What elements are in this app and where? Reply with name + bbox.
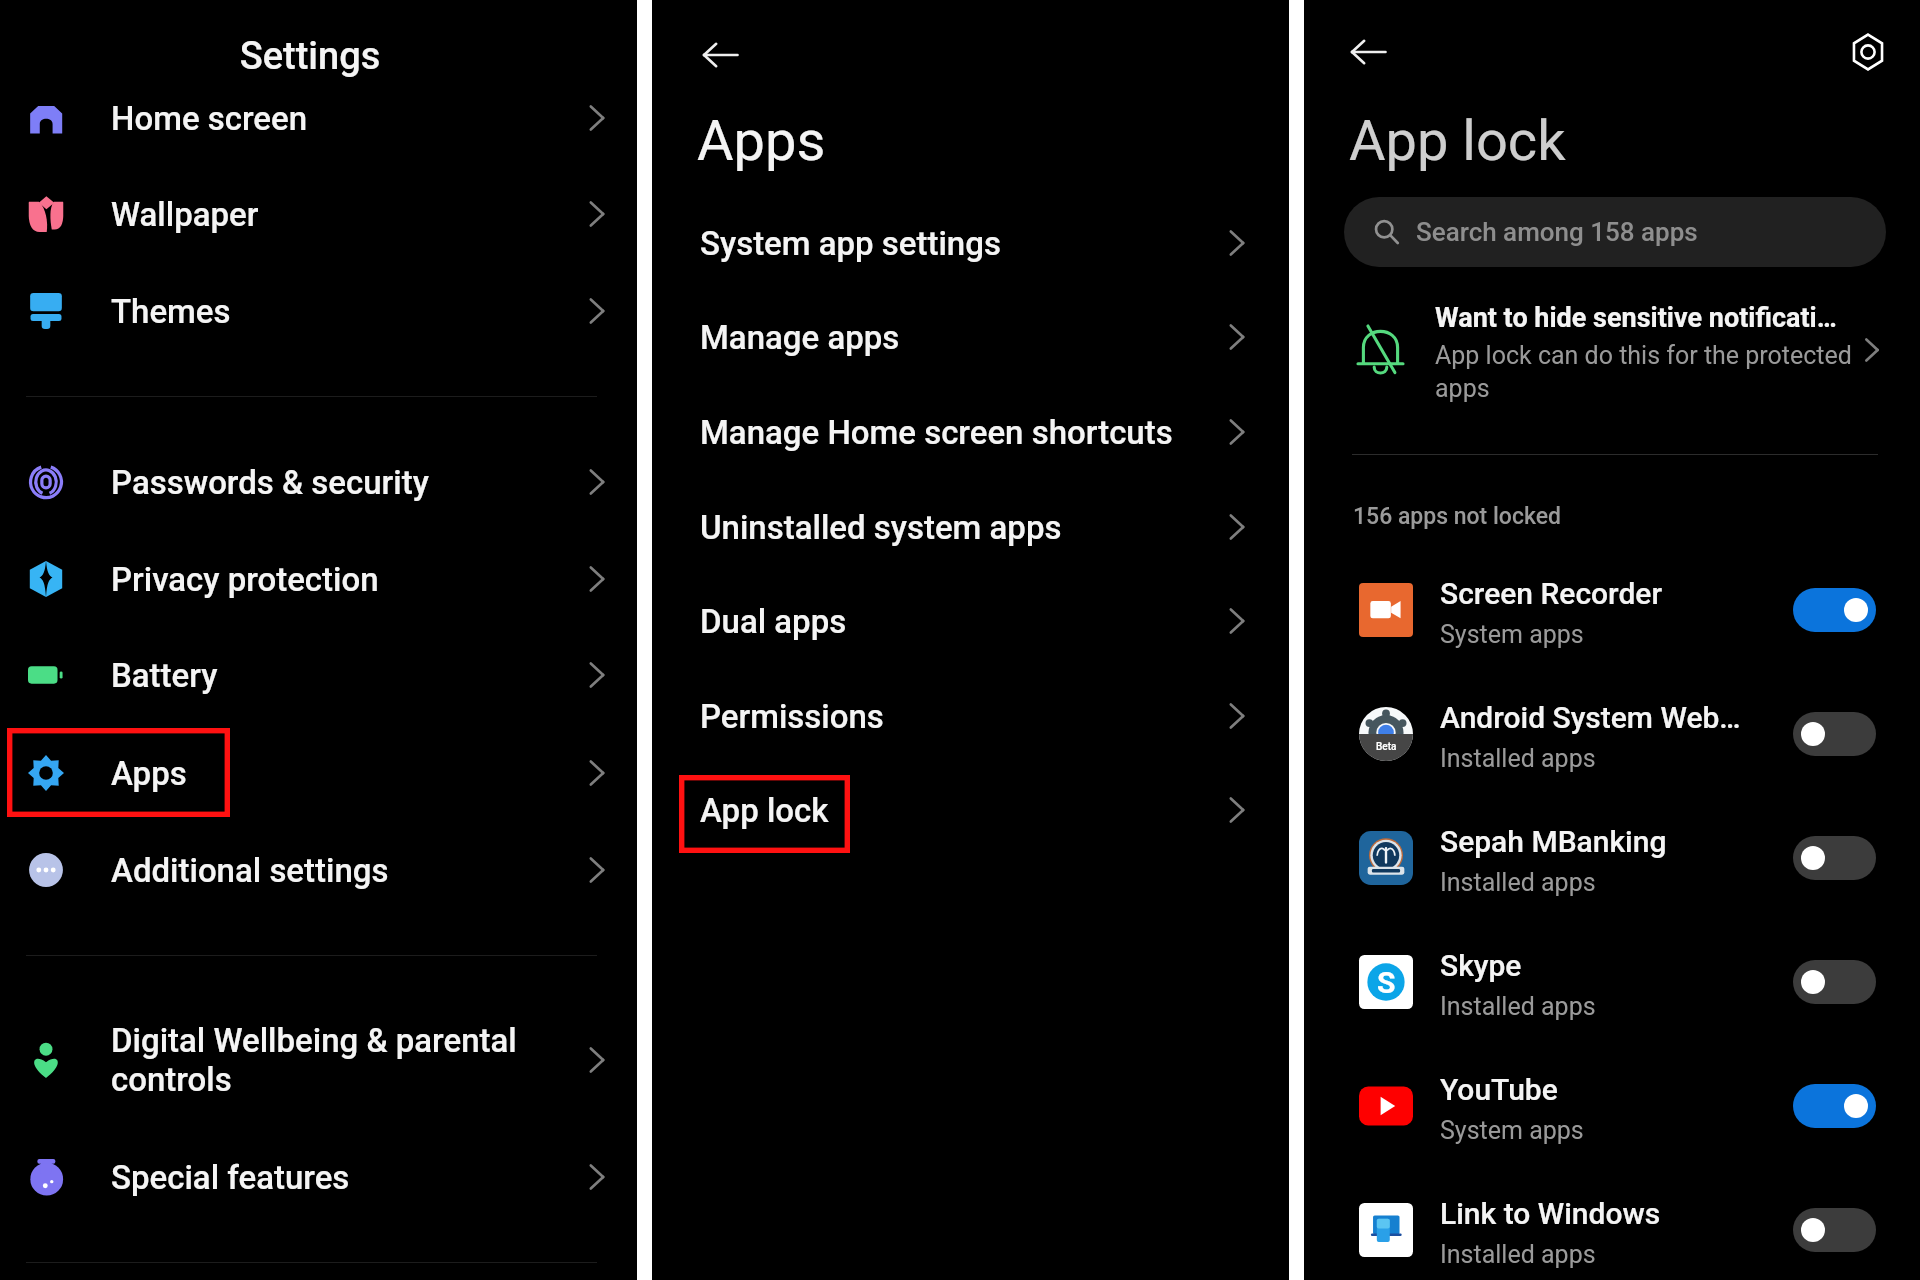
button[interactable] bbox=[0, 531, 637, 627]
staticText: Apps bbox=[697, 108, 826, 174]
staticText: Skype bbox=[1440, 948, 1522, 983]
button[interactable] bbox=[1304, 1168, 1920, 1280]
button[interactable]: Toggle lock bbox=[1793, 1208, 1876, 1252]
staticText: 156 apps not locked bbox=[1353, 503, 1561, 530]
staticText: Manage apps bbox=[700, 318, 900, 357]
button[interactable] bbox=[0, 1000, 637, 1120]
button[interactable] bbox=[652, 196, 1289, 290]
staticText: Digital Wellbeing & parental controls bbox=[111, 1021, 517, 1099]
button[interactable]: Open bbox=[1215, 505, 1259, 549]
button[interactable] bbox=[652, 290, 1289, 384]
staticText: Android System Web… bbox=[1440, 700, 1741, 735]
staticText: Installed apps bbox=[1440, 868, 1596, 897]
button[interactable]: Open bbox=[575, 557, 619, 601]
button[interactable] bbox=[1304, 548, 1920, 672]
button[interactable]: Back bbox=[696, 31, 744, 79]
button[interactable] bbox=[652, 574, 1289, 668]
staticText: Apps bbox=[111, 754, 187, 793]
button[interactable]: Open bbox=[575, 289, 619, 333]
button[interactable]: Open bbox=[575, 96, 619, 140]
button[interactable]: Search among 158 apps bbox=[1344, 197, 1886, 267]
button[interactable]: Toggle lock bbox=[1793, 1084, 1876, 1128]
staticText: App lock bbox=[700, 791, 829, 830]
button[interactable]: Open bbox=[575, 192, 619, 236]
button[interactable]: Open bbox=[575, 751, 619, 795]
staticText: Installed apps bbox=[1440, 992, 1596, 1021]
staticText: Screen Recorder bbox=[1440, 576, 1662, 611]
button[interactable]: Open bbox=[575, 1155, 619, 1199]
staticText: Special features bbox=[111, 1158, 350, 1197]
staticText: S bbox=[1377, 965, 1396, 1000]
staticText: Installed apps bbox=[1440, 744, 1596, 773]
button[interactable]: Open bbox=[575, 848, 619, 892]
button[interactable]: Back bbox=[1344, 28, 1392, 76]
button[interactable] bbox=[652, 480, 1289, 574]
staticText: System apps bbox=[1440, 620, 1584, 649]
staticText: Additional settings bbox=[111, 851, 389, 890]
staticText: Settings bbox=[0, 34, 620, 79]
staticText: Link to Windows bbox=[1440, 1196, 1661, 1231]
button[interactable] bbox=[1304, 796, 1920, 920]
button[interactable]: Open bbox=[1215, 788, 1259, 832]
button[interactable] bbox=[0, 70, 637, 166]
staticText: Dual apps bbox=[700, 602, 847, 641]
staticText: Home screen bbox=[111, 99, 308, 138]
staticText: Privacy protection bbox=[111, 560, 379, 599]
button[interactable]: Toggle lock bbox=[1793, 712, 1876, 756]
button[interactable] bbox=[0, 166, 637, 262]
staticText: Permissions bbox=[700, 697, 884, 736]
button[interactable] bbox=[1304, 672, 1920, 796]
staticText: Want to hide sensitive notificati… bbox=[1435, 302, 1837, 334]
button[interactable] bbox=[0, 627, 637, 723]
staticText: Battery bbox=[111, 656, 218, 695]
staticText: App lock bbox=[1349, 108, 1566, 174]
staticText: Beta bbox=[1376, 741, 1397, 753]
button[interactable] bbox=[652, 763, 1289, 857]
button[interactable] bbox=[1304, 295, 1920, 425]
staticText: Uninstalled system apps bbox=[700, 508, 1062, 547]
button[interactable]: Open bbox=[1850, 328, 1894, 372]
staticText: Themes bbox=[111, 292, 231, 331]
button[interactable] bbox=[0, 725, 637, 821]
button[interactable]: Open bbox=[1215, 221, 1259, 265]
staticText: Wallpaper bbox=[111, 195, 259, 234]
button[interactable]: Settings bbox=[1846, 30, 1890, 74]
staticText: System apps bbox=[1440, 1116, 1584, 1145]
button[interactable]: Open bbox=[575, 460, 619, 504]
button[interactable] bbox=[0, 434, 637, 530]
staticText: Sepah MBanking bbox=[1440, 824, 1667, 859]
button[interactable]: Open bbox=[575, 653, 619, 697]
button[interactable] bbox=[0, 263, 637, 359]
button[interactable]: Open bbox=[1215, 410, 1259, 454]
staticText: Passwords & security bbox=[111, 463, 429, 502]
button[interactable]: Toggle lock bbox=[1793, 588, 1876, 632]
staticText: Search among 158 apps bbox=[1416, 217, 1698, 247]
button[interactable] bbox=[652, 385, 1289, 479]
staticText: System app settings bbox=[700, 224, 1001, 263]
button[interactable]: Toggle lock bbox=[1793, 836, 1876, 880]
button[interactable] bbox=[1304, 920, 1920, 1044]
button[interactable]: Toggle lock bbox=[1793, 960, 1876, 1004]
button[interactable] bbox=[0, 822, 637, 918]
staticText: Manage Home screen shortcuts bbox=[700, 413, 1173, 452]
button[interactable] bbox=[0, 1129, 637, 1225]
button[interactable] bbox=[1304, 1044, 1920, 1168]
button[interactable]: Open bbox=[1215, 599, 1259, 643]
button[interactable]: Open bbox=[1215, 315, 1259, 359]
button[interactable]: Open bbox=[575, 1038, 619, 1082]
staticText: Installed apps bbox=[1440, 1240, 1596, 1269]
button[interactable]: Open bbox=[1215, 694, 1259, 738]
button[interactable] bbox=[652, 669, 1289, 763]
staticText: App lock can do this for the protected a… bbox=[1435, 341, 1852, 403]
staticText: YouTube bbox=[1440, 1072, 1558, 1107]
